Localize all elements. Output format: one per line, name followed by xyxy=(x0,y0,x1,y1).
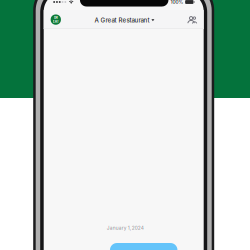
staticText: January 1, 2024 xyxy=(107,225,144,231)
staticText: A Great Restaurant xyxy=(94,16,149,24)
button[interactable]: A Great Restaurant xyxy=(91,12,157,28)
button[interactable]: Members xyxy=(184,15,199,29)
staticText: 100% xyxy=(170,0,183,5)
staticText: EAT xyxy=(53,20,59,24)
staticText: GR xyxy=(54,16,58,19)
button[interactable]: Restaurant profile xyxy=(47,12,64,27)
